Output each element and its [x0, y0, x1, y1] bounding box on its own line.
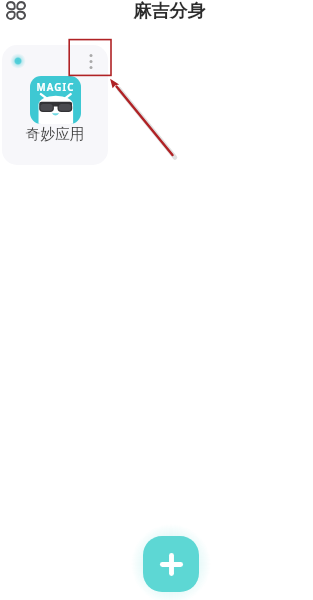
button[interactable]: Add: [143, 536, 199, 592]
staticText: 麻吉分身: [26, 0, 313, 23]
button[interactable]: More options: [77, 45, 105, 79]
staticText: 奇妙应用: [2, 125, 108, 144]
button[interactable]: More options: [2, 45, 108, 165]
button[interactable]: Apps: [5, 0, 26, 20]
staticText: MAGIC: [30, 81, 81, 94]
